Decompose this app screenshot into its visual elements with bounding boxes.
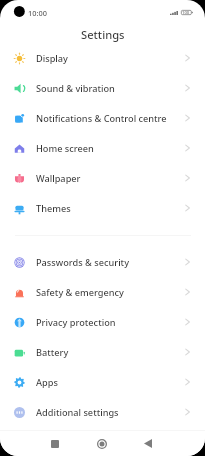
- button[interactable]: Privacy protection: [0, 307, 205, 337]
- staticText: Wallpaper: [36, 172, 81, 185]
- staticText: 100: [182, 10, 190, 15]
- button[interactable]: Battery: [0, 337, 205, 367]
- staticText: Sound & vibration: [36, 82, 115, 95]
- staticText: Passwords & security: [36, 256, 129, 269]
- staticText: Battery: [36, 346, 69, 359]
- staticText: Display: [36, 52, 68, 65]
- button[interactable]: Back: [135, 431, 161, 456]
- staticText: Apps: [36, 376, 58, 389]
- button[interactable]: Passwords & security: [0, 247, 205, 277]
- button[interactable]: Safety & emergency: [0, 277, 205, 307]
- button[interactable]: Home screen: [0, 133, 205, 163]
- button[interactable]: Themes: [0, 193, 205, 223]
- button[interactable]: Recent apps: [42, 431, 68, 456]
- button[interactable]: Home: [89, 431, 115, 456]
- staticText: Privacy protection: [36, 316, 116, 329]
- staticText: Settings: [81, 27, 125, 42]
- button[interactable]: Wallpaper: [0, 163, 205, 193]
- staticText: Home screen: [36, 142, 94, 155]
- button[interactable]: Display: [0, 43, 205, 73]
- staticText: Additional settings: [36, 406, 119, 419]
- staticText: Safety & emergency: [36, 286, 124, 299]
- button[interactable]: Additional settings: [0, 397, 205, 427]
- staticText: Themes: [36, 202, 71, 215]
- staticText: Notifications & Control centre: [36, 112, 167, 125]
- button[interactable]: Sound & vibration: [0, 73, 205, 103]
- staticText: 10:00: [28, 8, 47, 18]
- button[interactable]: Apps: [0, 367, 205, 397]
- button[interactable]: Notifications & Control centre: [0, 103, 205, 133]
